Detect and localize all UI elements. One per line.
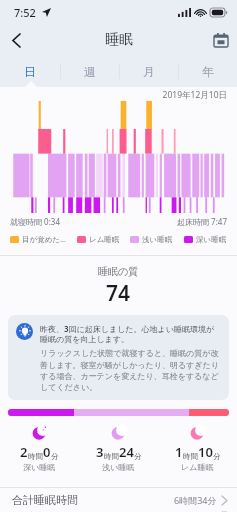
staticText: 分 xyxy=(134,452,142,461)
staticText: 6時間34分 xyxy=(174,494,217,506)
staticText: 74 xyxy=(106,279,131,308)
button[interactable]: 月 xyxy=(119,56,178,87)
button[interactable]: 年 xyxy=(178,56,237,87)
staticText: 分 xyxy=(51,452,59,461)
staticText: 時間 xyxy=(28,452,43,461)
staticText: 週 xyxy=(84,64,96,79)
button[interactable]: 週 xyxy=(60,56,119,87)
staticText: 分 xyxy=(213,452,221,461)
staticText: 深い睡眠 xyxy=(196,235,227,244)
staticText: レム睡眠 xyxy=(89,235,120,244)
staticText: 浅い睡眠 xyxy=(102,462,135,472)
staticText: 3 xyxy=(96,443,104,461)
staticText: 7:52 xyxy=(14,5,36,20)
staticText: 1 xyxy=(175,443,183,461)
staticText: 2 xyxy=(20,443,28,461)
staticText: 0 xyxy=(43,443,51,461)
staticText: 24 xyxy=(119,443,134,461)
staticText: 睡眠の質 xyxy=(98,265,139,278)
staticText: 日 xyxy=(24,64,36,79)
staticText: 浅い睡眠 xyxy=(142,235,173,244)
staticText: 合計睡眠時間 xyxy=(12,493,78,507)
staticText: リラックスした状態で就寝すると、睡眠の質が改善します。寝室が騒がしかったり、明る… xyxy=(40,348,221,392)
staticText: 10 xyxy=(198,443,213,461)
button[interactable]: 昨夜、3回に起床しました。心地よい睡眠環境が睡眠の質を向上します。 xyxy=(8,315,229,400)
staticText: 月 xyxy=(143,64,155,79)
staticText: 時間 xyxy=(183,452,198,461)
staticText: 2019年12月10日 xyxy=(0,89,227,101)
button[interactable]: カレンダー xyxy=(205,24,237,56)
button[interactable]: 日 xyxy=(0,56,60,87)
staticText: 目が覚めた… xyxy=(22,234,66,244)
button[interactable]: 3 xyxy=(79,424,158,472)
button[interactable]: 合計睡眠時間 xyxy=(0,488,237,512)
button[interactable]: 1 xyxy=(158,424,237,472)
staticText: レム睡眠 xyxy=(181,462,214,472)
button[interactable]: 2 xyxy=(0,424,79,472)
button[interactable]: 戻る xyxy=(0,24,32,56)
staticText: 昨夜、3回に起床しました。心地よい睡眠環境が睡眠の質を向上します。 xyxy=(40,323,221,345)
staticText: 就寝時間 0:34 xyxy=(10,216,60,227)
staticText: 起床時間 7:47 xyxy=(177,216,227,227)
staticText: 深い睡眠 xyxy=(23,462,56,472)
staticText: 睡眠 xyxy=(105,31,133,49)
staticText: 時間 xyxy=(104,452,119,461)
staticText: 年 xyxy=(202,64,214,79)
